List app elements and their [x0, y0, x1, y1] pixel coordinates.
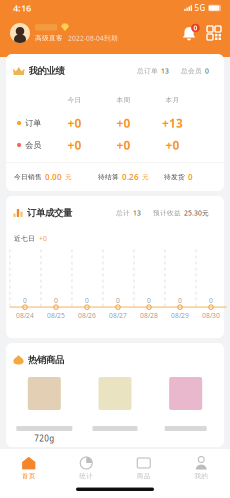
staticText: +0: [67, 115, 81, 131]
staticText: +0: [116, 137, 130, 153]
staticText: 我的: [194, 472, 208, 480]
staticText: 0.26: [122, 172, 139, 182]
staticText: 预计收益: [153, 209, 181, 217]
staticText: 0: [54, 296, 58, 305]
button[interactable]: [80, 377, 150, 443]
staticText: +0: [116, 115, 130, 131]
staticText: 我的业绩: [28, 65, 64, 77]
staticText: 今日: [67, 96, 81, 104]
button[interactable]: 商品: [115, 452, 172, 484]
staticText: 0: [23, 296, 27, 305]
staticText: 总计: [116, 209, 130, 217]
button[interactable]: 720g: [9, 377, 80, 443]
staticText: 08/30: [202, 311, 220, 320]
staticText: 订单: [25, 118, 41, 128]
staticText: 商品: [137, 472, 151, 480]
staticText: 08/27: [109, 311, 127, 320]
staticText: 总订单: [137, 67, 158, 75]
staticText: 0: [193, 23, 197, 32]
staticText: +13: [162, 115, 183, 131]
button[interactable]: 统计: [57, 452, 115, 484]
staticText: +0: [67, 137, 81, 153]
staticText: 高级直客: [35, 34, 63, 42]
staticText: 08/29: [171, 311, 189, 320]
staticText: 热销商品: [28, 354, 64, 366]
staticText: 元: [65, 173, 72, 181]
staticText: 统计: [79, 472, 93, 480]
staticText: 会员: [25, 140, 41, 150]
button[interactable]: [150, 377, 221, 443]
staticText: 本周: [116, 96, 130, 104]
staticText: 首页: [22, 472, 36, 480]
staticText: 08/24: [16, 311, 34, 320]
staticText: 今日销售: [14, 173, 42, 181]
staticText: 08/28: [140, 311, 158, 320]
staticText: 720g: [34, 433, 54, 444]
staticText: +0: [165, 137, 179, 153]
staticText: 08/26: [78, 311, 96, 320]
staticText: 0: [116, 296, 120, 305]
staticText: 4:16: [13, 2, 31, 14]
staticText: 0: [188, 172, 193, 182]
staticText: 0.00: [45, 172, 62, 182]
staticText: 0: [205, 67, 209, 75]
staticText: 元: [142, 173, 149, 181]
staticText: 5G: [194, 3, 205, 13]
staticText: 订单成交量: [27, 207, 72, 219]
staticText: 0: [209, 296, 213, 305]
staticText: 0: [85, 296, 89, 305]
staticText: 本月: [165, 96, 179, 104]
staticText: 25.30元: [184, 209, 209, 217]
staticText: 13: [133, 209, 141, 217]
staticText: 待结算: [98, 173, 119, 181]
button[interactable]: 我的: [172, 452, 230, 484]
button[interactable]: 扫一扫: [198, 26, 221, 40]
staticText: +0: [39, 234, 47, 243]
staticText: 0: [178, 296, 182, 305]
staticText: 总会员: [181, 67, 202, 75]
staticText: 0: [147, 296, 151, 305]
staticText: 13: [161, 67, 169, 75]
staticText: 08/25: [47, 311, 65, 320]
staticText: 近七日: [14, 234, 35, 243]
staticText: 2022-08-04到期: [68, 34, 118, 42]
button[interactable]: 通知: [180, 25, 198, 41]
staticText: 待发货: [164, 173, 185, 181]
button[interactable]: 首页: [0, 452, 57, 484]
